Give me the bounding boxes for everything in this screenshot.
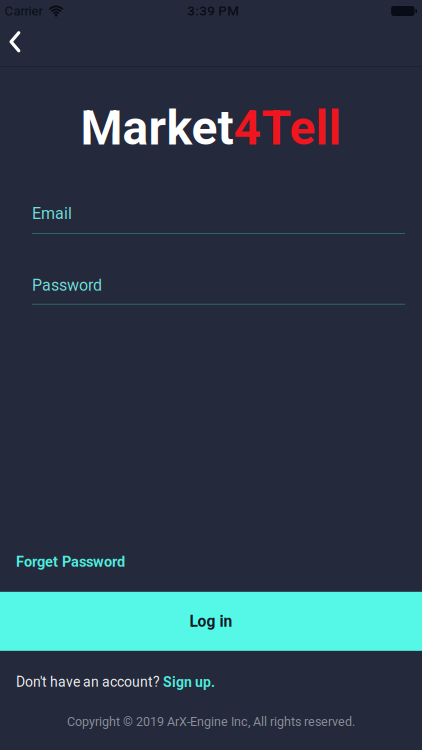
staticText: Carrier (4, 3, 42, 19)
staticText: Forget Password (16, 553, 125, 570)
button[interactable]: Email (32, 204, 405, 234)
staticText: Copyright © 2019 ArX-Engine Inc, All rig… (67, 714, 355, 729)
button[interactable]: Sign up. (163, 674, 215, 690)
button[interactable]: Password (32, 276, 405, 305)
staticText: Don't have an account? (16, 674, 163, 690)
button[interactable]: Forget Password (16, 553, 125, 570)
staticText: Sign up. (163, 674, 215, 690)
staticText: Log in (189, 612, 232, 630)
staticText: Password (32, 276, 102, 295)
staticText: Market (80, 100, 233, 156)
button[interactable]: Back (0, 22, 40, 66)
staticText: 4Tell (233, 100, 341, 156)
staticText: Email (32, 204, 72, 223)
staticText: 3:39 PM (187, 3, 239, 19)
button[interactable]: Log in (0, 592, 422, 651)
